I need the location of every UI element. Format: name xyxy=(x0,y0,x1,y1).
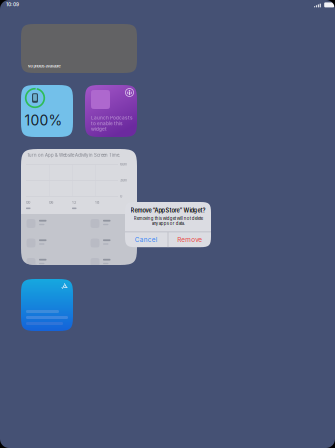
staticText: Remove “App Store” Widget? xyxy=(130,207,205,214)
button[interactable]: Podcasts widget xyxy=(85,85,137,137)
staticText: No photos available xyxy=(27,64,60,68)
staticText: 00 xyxy=(26,200,30,205)
staticText: 100% xyxy=(24,112,62,129)
button[interactable]: Photos widget, no photos available xyxy=(21,24,137,73)
staticText: 60m xyxy=(120,162,127,166)
staticText: Launch Podcasts to enable this widget xyxy=(91,115,133,132)
button[interactable]: App Store widget xyxy=(21,279,73,331)
button[interactable]: Remove xyxy=(168,232,211,247)
staticText: 18 xyxy=(95,200,99,205)
staticText: 12 xyxy=(72,200,76,205)
staticText: Turn on App & Website Activity in Screen… xyxy=(27,152,120,158)
staticText: Removing this widget will not delete any… xyxy=(133,216,202,226)
staticText: Cancel xyxy=(135,236,158,243)
button[interactable]: Cancel xyxy=(125,232,168,247)
button[interactable]: Battery widget, 100 percent xyxy=(21,85,73,137)
staticText: 10:09 xyxy=(6,2,19,7)
staticText: Remove xyxy=(177,236,202,243)
staticText: 06 xyxy=(49,200,53,205)
staticText: 0 xyxy=(120,194,122,198)
staticText: 30m xyxy=(120,178,127,182)
button[interactable]: Screen Time widget xyxy=(21,149,137,265)
